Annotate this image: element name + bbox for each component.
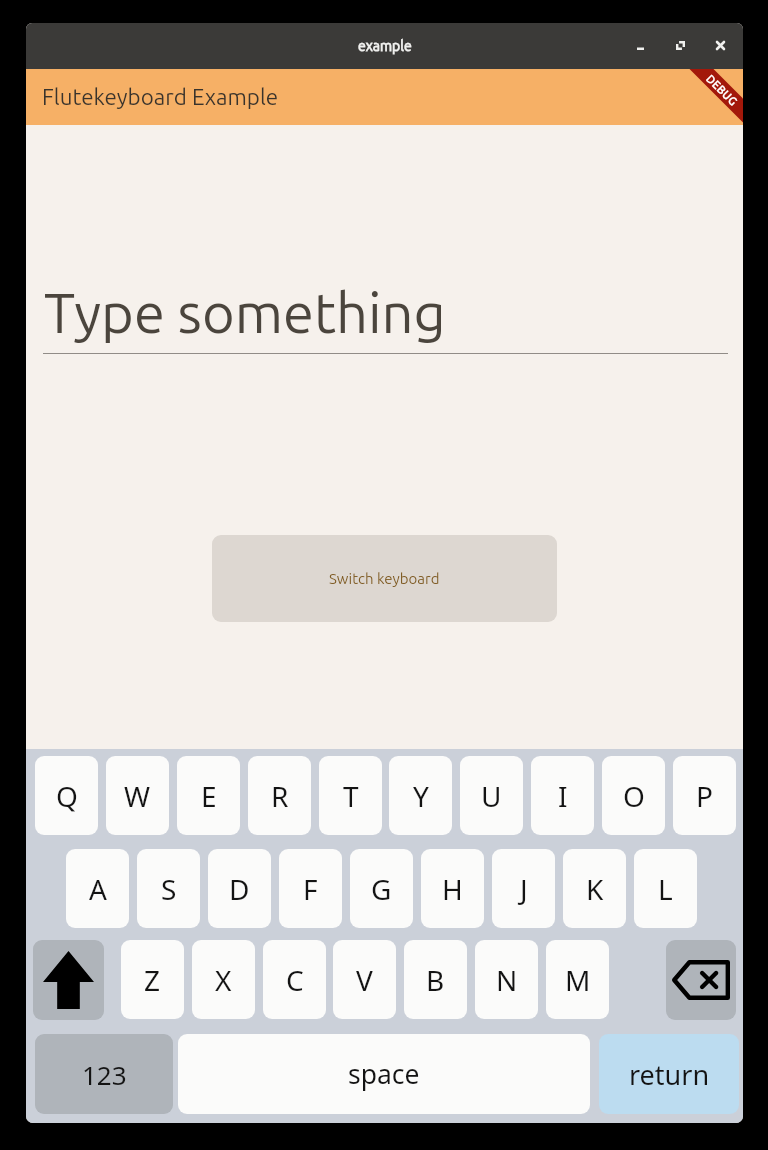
button[interactable]: G — [350, 849, 413, 928]
button[interactable]: return — [599, 1034, 739, 1114]
button[interactable]: T — [319, 756, 382, 835]
staticText: Flutekeyboard Example — [42, 84, 279, 109]
button[interactable]: H — [421, 849, 484, 928]
staticText: M — [565, 961, 591, 999]
staticText: W — [124, 777, 151, 815]
button[interactable]: N — [475, 940, 538, 1019]
staticText: Y — [413, 777, 429, 815]
staticText: V — [356, 961, 373, 999]
staticText: G — [371, 870, 392, 908]
button[interactable]: E — [177, 756, 240, 835]
staticText: J — [520, 870, 528, 908]
staticText: return — [629, 1056, 710, 1093]
button[interactable]: X — [192, 940, 255, 1019]
button[interactable]: Z — [121, 940, 184, 1019]
button[interactable]: U — [460, 756, 523, 835]
staticText: S — [161, 870, 177, 908]
button[interactable]: Minimize — [626, 33, 654, 57]
button[interactable]: Close — [706, 33, 734, 57]
button[interactable]: Type something — [43, 273, 728, 355]
button[interactable]: Q — [35, 756, 98, 835]
button[interactable]: C — [263, 940, 326, 1019]
button[interactable]: O — [602, 756, 665, 835]
button[interactable]: F — [279, 849, 342, 928]
button[interactable]: M — [546, 940, 609, 1019]
button[interactable]: Y — [389, 756, 452, 835]
staticText: Q — [56, 777, 78, 815]
staticText: 123 — [82, 1057, 127, 1092]
staticText: H — [442, 870, 463, 908]
button[interactable]: 123 — [35, 1034, 173, 1114]
button[interactable]: Backspace — [666, 940, 736, 1020]
staticText: K — [586, 870, 604, 908]
staticText: C — [286, 961, 304, 999]
button[interactable]: D — [208, 849, 271, 928]
staticText: Z — [144, 961, 161, 999]
staticText: N — [496, 961, 518, 999]
staticText: R — [271, 777, 289, 815]
button[interactable]: B — [404, 940, 467, 1019]
button[interactable]: A — [66, 849, 129, 928]
staticText: X — [215, 961, 232, 999]
button[interactable]: J — [492, 849, 555, 928]
button[interactable]: V — [333, 940, 396, 1019]
staticText: I — [558, 777, 568, 815]
button[interactable]: K — [563, 849, 626, 928]
button[interactable]: Maximize — [666, 33, 694, 57]
staticText: B — [426, 961, 445, 999]
staticText: O — [623, 777, 645, 815]
button[interactable]: Switch keyboard — [212, 535, 557, 622]
staticText: T — [343, 777, 359, 815]
staticText: Type something — [44, 281, 446, 344]
staticText: A — [89, 870, 107, 908]
staticText: E — [201, 777, 217, 815]
button[interactable]: R — [248, 756, 311, 835]
staticText: U — [481, 777, 502, 815]
staticText: example — [358, 38, 412, 54]
staticText: space — [348, 1056, 420, 1092]
button[interactable]: W — [106, 756, 169, 835]
button[interactable]: space — [178, 1034, 590, 1114]
button[interactable]: P — [673, 756, 736, 835]
button[interactable]: Shift — [33, 940, 104, 1020]
button[interactable]: I — [531, 756, 594, 835]
staticText: P — [696, 777, 713, 815]
staticText: Switch keyboard — [329, 570, 440, 587]
staticText: DEBUG — [704, 72, 740, 108]
button[interactable]: L — [634, 849, 697, 928]
button[interactable]: S — [137, 849, 200, 928]
staticText: D — [229, 870, 250, 908]
staticText: L — [658, 870, 673, 908]
staticText: F — [303, 870, 318, 908]
